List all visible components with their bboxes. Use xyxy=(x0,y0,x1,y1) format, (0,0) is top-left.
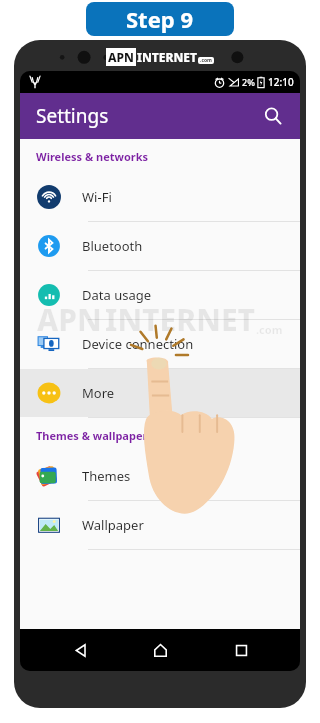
button[interactable]: Search xyxy=(256,99,290,133)
button[interactable]: Home xyxy=(139,629,181,671)
staticText: Wireless & networks xyxy=(36,149,149,164)
staticText: INTERNET xyxy=(137,49,198,65)
button[interactable]: Back xyxy=(59,629,101,671)
staticText: APN xyxy=(37,299,102,340)
staticText: .com xyxy=(200,57,212,64)
staticText: Wallpaper xyxy=(82,516,144,534)
staticText: INTERNET xyxy=(105,299,256,340)
staticText: More xyxy=(82,384,115,402)
button[interactable]: Wi-Fi xyxy=(20,173,300,221)
staticText: Settings xyxy=(36,103,109,129)
button[interactable]: More xyxy=(20,369,300,417)
button[interactable]: Wallpaper xyxy=(20,501,300,549)
staticText: APN xyxy=(108,49,134,65)
button[interactable]: Bluetooth xyxy=(20,222,300,270)
staticText: .com xyxy=(256,322,283,337)
staticText: Wi-Fi xyxy=(82,188,112,206)
staticText: Step 9 xyxy=(126,4,194,34)
staticText: Bluetooth xyxy=(82,237,143,255)
button[interactable]: Recent apps xyxy=(220,629,262,671)
staticText: 2% xyxy=(242,76,255,88)
staticText: Themes xyxy=(82,467,131,485)
button[interactable]: Data usage xyxy=(20,271,300,319)
staticText: Data usage xyxy=(82,286,152,304)
staticText: Themes & wallpaper xyxy=(36,428,148,443)
staticText: Device connection xyxy=(82,335,194,353)
staticText: 12:10 xyxy=(268,75,294,89)
button[interactable]: Device connection xyxy=(20,320,300,368)
button[interactable]: Themes xyxy=(20,452,300,500)
